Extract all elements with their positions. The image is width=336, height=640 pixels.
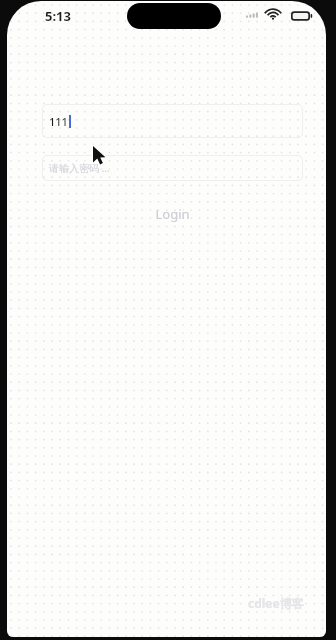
staticText: 请输入密码 ... (49, 161, 110, 175)
other: Pointer (7, 1, 326, 637)
button[interactable]: 请输入密码 ... (42, 155, 303, 181)
staticText: 111 (49, 114, 68, 129)
staticText: cdlee博客 (248, 595, 304, 611)
staticText: Login (155, 205, 190, 223)
button[interactable]: 111 (42, 104, 303, 138)
staticText: 5:13 (45, 7, 71, 25)
button[interactable]: Login (42, 201, 303, 227)
